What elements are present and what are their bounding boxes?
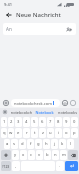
staticText: l <box>70 141 72 147</box>
staticText: 6 <box>41 119 44 125</box>
staticText: p <box>73 130 76 136</box>
button[interactable]: v <box>36 150 43 160</box>
staticText: notebooks <box>58 110 77 115</box>
button[interactable]: Senden <box>69 99 77 107</box>
staticText: 4 <box>25 119 28 125</box>
staticText: i <box>58 130 60 136</box>
staticText: n <box>54 152 57 158</box>
button[interactable]: Notebook <box>33 108 56 116</box>
button[interactable]: h <box>43 139 50 149</box>
staticText: f <box>30 141 32 147</box>
button[interactable]: c <box>28 150 35 160</box>
staticText: s <box>13 141 16 147</box>
button[interactable]: 3 <box>15 117 22 127</box>
button[interactable]: 0 <box>71 117 78 127</box>
staticText: 7 <box>49 119 52 125</box>
staticText: r <box>26 130 28 136</box>
button[interactable]: x <box>20 150 27 160</box>
button[interactable]: Emoji <box>61 99 69 107</box>
staticText: Neue Nachricht <box>16 11 61 19</box>
staticText: t <box>34 130 36 136</box>
staticText: notebookcheck <box>10 110 33 115</box>
button[interactable]: 5 <box>31 117 38 127</box>
button[interactable]: q <box>1 128 7 138</box>
button[interactable]: notebookcheck <box>10 108 33 116</box>
button[interactable]: g <box>35 139 42 149</box>
button[interactable]: Einstellungen <box>0 108 10 116</box>
staticText: 1 <box>3 119 6 125</box>
button[interactable]: Umschalt <box>1 150 11 160</box>
staticText: j <box>54 141 56 147</box>
button[interactable]: 1 <box>1 117 7 127</box>
button[interactable]: 9 <box>63 117 70 127</box>
button[interactable]: m <box>60 150 67 160</box>
button[interactable]: p <box>71 128 78 138</box>
button[interactable]: notebookcheck.com <box>11 99 60 107</box>
button[interactable]: l <box>67 139 74 149</box>
staticText: 9:41 <box>4 2 12 7</box>
staticText: y <box>14 152 17 158</box>
button[interactable]: r <box>23 128 30 138</box>
button[interactable]: t <box>31 128 38 138</box>
staticText: 3 <box>17 119 20 125</box>
button[interactable]: y <box>12 150 19 160</box>
button[interactable]: a <box>4 139 10 149</box>
button[interactable]: Senden <box>65 161 78 171</box>
button[interactable]: u <box>47 128 54 138</box>
staticText: 2 <box>10 119 13 125</box>
staticText: 8 <box>57 119 60 125</box>
staticText: h <box>45 141 48 147</box>
button[interactable]: 7 <box>47 117 54 127</box>
staticText: v <box>38 152 41 158</box>
staticText: o <box>65 130 68 136</box>
staticText: u <box>49 130 52 136</box>
button[interactable]: k <box>59 139 66 149</box>
button[interactable]: 8 <box>55 117 62 127</box>
staticText: 0 <box>73 119 76 125</box>
button[interactable]: i <box>55 128 62 138</box>
staticText: w <box>9 130 13 136</box>
staticText: k <box>61 141 64 147</box>
button[interactable]: o <box>63 128 70 138</box>
button[interactable]: An <box>3 23 76 35</box>
button[interactable]: 2 <box>8 117 14 127</box>
staticText: a <box>6 141 9 147</box>
staticText: 9 <box>65 119 68 125</box>
button[interactable]: s <box>11 139 18 149</box>
staticText: notebookcheck.com <box>14 101 52 106</box>
staticText: q <box>3 130 6 136</box>
staticText: g <box>37 141 40 147</box>
button[interactable]: Kontakt hinzufügen <box>64 25 73 34</box>
button[interactable]: , <box>12 161 20 171</box>
button[interactable]: d <box>19 139 26 149</box>
staticText: b <box>46 152 49 158</box>
button[interactable]: 6 <box>39 117 46 127</box>
staticText: ?123 <box>2 164 10 169</box>
button[interactable]: Zurück <box>3 9 14 20</box>
button[interactable]: Symbole <box>1 161 11 171</box>
staticText: x <box>22 152 25 158</box>
staticText: . <box>59 163 61 169</box>
button[interactable]: Anhang hinzufügen <box>2 99 10 107</box>
button[interactable]: j <box>51 139 58 149</box>
staticText: , <box>15 163 17 169</box>
button[interactable]: Löschen <box>68 150 78 160</box>
staticText: c <box>30 152 33 158</box>
button[interactable]: e <box>15 128 22 138</box>
button[interactable]: z <box>39 128 46 138</box>
staticText: z <box>42 130 44 136</box>
staticText: m <box>62 152 66 158</box>
button[interactable]: w <box>8 128 14 138</box>
button[interactable]: notebooks <box>56 108 79 116</box>
staticText: An <box>6 26 12 32</box>
staticText: d <box>21 141 24 147</box>
button[interactable]: b <box>44 150 51 160</box>
staticText: 5 <box>33 119 36 125</box>
staticText: Notebook <box>35 110 54 115</box>
button[interactable]: f <box>27 139 34 149</box>
button[interactable]: 4 <box>23 117 30 127</box>
button[interactable]: . <box>56 161 64 171</box>
button[interactable]: n <box>52 150 59 160</box>
staticText: e <box>17 130 20 136</box>
